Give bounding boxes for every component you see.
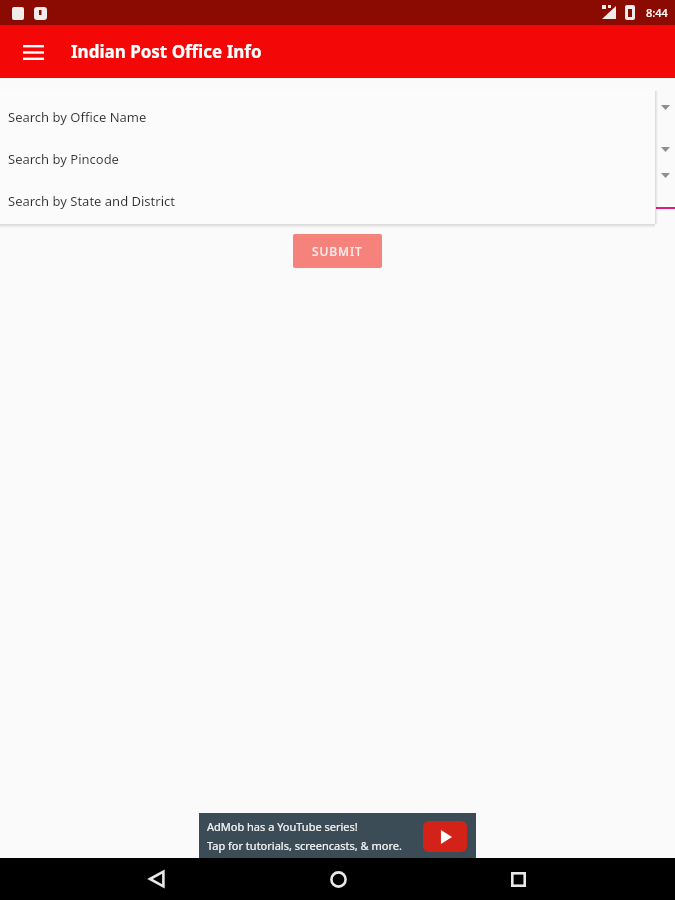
staticText: Indian Post Office Info (71, 40, 262, 63)
button[interactable]: Open navigation drawer (14, 33, 52, 71)
button[interactable]: Play YouTube video (423, 821, 467, 852)
staticText: Tap for tutorials, screencasts, & more. (207, 838, 402, 853)
button[interactable]: Expand dropdown (657, 167, 673, 183)
button[interactable]: Back (134, 858, 180, 900)
button[interactable]: Search by Office Name (0, 96, 655, 138)
button[interactable]: Recent apps (495, 858, 541, 900)
button[interactable]: Home (315, 858, 361, 900)
staticText: Search by State and District (8, 192, 175, 210)
staticText: 8:44 (646, 5, 668, 20)
button[interactable]: Search by Pincode (0, 138, 655, 180)
button[interactable]: SUBMIT (293, 234, 382, 268)
staticText: Search by Office Name (8, 108, 147, 126)
button[interactable]: Expand dropdown (657, 99, 673, 115)
button[interactable]: Search by State and District (0, 180, 655, 222)
staticText: AdMob has a YouTube series! (207, 819, 358, 834)
button[interactable]: Expand dropdown (657, 141, 673, 157)
staticText: SUBMIT (312, 243, 363, 259)
staticText: Search by Pincode (8, 150, 119, 168)
button[interactable]: AdMob has a YouTube series! (199, 813, 476, 859)
